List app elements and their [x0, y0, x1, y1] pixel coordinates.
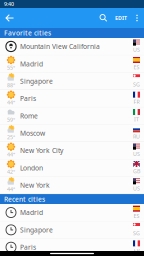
staticText: 9:40 — [4, 0, 14, 8]
button[interactable]: Search — [95, 9, 112, 26]
staticText: Favorite cities — [4, 29, 51, 37]
button[interactable]: 44° — [0, 177, 144, 194]
button[interactable]: Mountain View California — [0, 38, 144, 55]
staticText: 55° — [7, 64, 15, 71]
button[interactable]: Back — [0, 8, 19, 27]
staticText: Singapore — [20, 225, 53, 234]
button[interactable]: 25° — [0, 125, 144, 142]
button[interactable]: 42° — [0, 159, 144, 176]
button[interactable]: 88° — [0, 73, 144, 90]
staticText: 25° — [7, 134, 15, 141]
staticText: Recent cities — [4, 195, 45, 203]
button[interactable]: More options — [130, 9, 144, 26]
staticText: 44° — [7, 99, 15, 106]
staticText: 59° — [7, 116, 15, 123]
staticText: US — [133, 46, 140, 53]
button[interactable]: EDIT — [112, 11, 130, 25]
staticText: Moscow — [20, 129, 45, 138]
staticText: New York City — [20, 146, 63, 155]
button[interactable]: 59° — [0, 107, 144, 124]
staticText: ES — [133, 64, 139, 71]
button[interactable]: 55° — [0, 55, 144, 72]
staticText: Rome — [20, 111, 38, 120]
staticText: Mountain View California — [20, 42, 100, 51]
staticText: SG — [133, 81, 140, 88]
staticText: US — [133, 185, 140, 192]
staticText: Singapore — [20, 77, 53, 86]
staticText: GB — [133, 168, 140, 175]
button[interactable]: Madrid — [0, 204, 144, 221]
staticText: 44° — [7, 186, 15, 193]
button[interactable]: 44° — [0, 142, 144, 159]
staticText: SG — [133, 230, 140, 237]
button[interactable]: Paris — [0, 239, 144, 256]
button[interactable]: 44° — [0, 90, 144, 107]
staticText: Paris — [20, 243, 36, 252]
staticText: London — [20, 163, 43, 172]
staticText: New York — [20, 181, 50, 190]
staticText: 42° — [7, 168, 15, 175]
button[interactable]: Singapore — [0, 221, 144, 238]
staticText: Madrid — [20, 59, 43, 68]
staticText: 44° — [7, 151, 15, 158]
staticText: EDIT — [115, 14, 127, 22]
staticText: FR — [133, 247, 139, 254]
staticText: Madrid — [20, 208, 43, 217]
staticText: FR — [133, 98, 139, 105]
staticText: ES — [133, 212, 139, 219]
staticText: US — [133, 150, 140, 157]
staticText: Paris — [20, 94, 36, 103]
staticText: RU — [133, 133, 140, 140]
staticText: IT — [134, 116, 139, 123]
staticText: 88° — [7, 82, 15, 89]
